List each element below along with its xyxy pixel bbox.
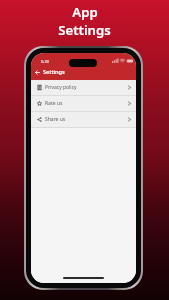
staticText: Share us <box>45 116 66 123</box>
staticText: Settings <box>43 68 65 76</box>
button[interactable]: Privacy policy <box>31 80 136 95</box>
staticText: Settings <box>58 21 111 39</box>
staticText: 6:30 <box>41 59 49 64</box>
button[interactable]: Share us <box>31 112 136 127</box>
staticText: Privacy policy <box>45 84 77 91</box>
staticText: App <box>72 3 98 21</box>
button[interactable]: Rate us <box>31 96 136 111</box>
staticText: Rate us <box>45 100 63 107</box>
button[interactable]: Back <box>35 70 40 75</box>
